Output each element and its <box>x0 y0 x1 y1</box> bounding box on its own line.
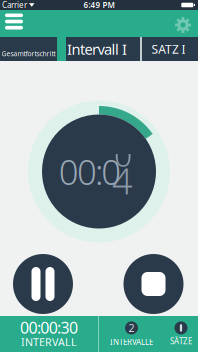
button[interactable]: SATZ I <box>142 37 198 61</box>
staticText: Intervall I <box>67 39 127 59</box>
staticText: 0 <box>114 133 132 176</box>
staticText: 00:0 <box>59 148 121 194</box>
staticText: 4 <box>112 157 133 204</box>
staticText: INTERVALL <box>21 335 77 349</box>
button[interactable]: Gesamtfortschritt <box>0 37 57 61</box>
staticText: SÄTZE <box>170 336 192 346</box>
staticText: 6:49 PM <box>83 0 114 10</box>
staticText: INTERVALLE <box>110 336 153 347</box>
button[interactable]: Intervall I <box>66 37 140 61</box>
button[interactable]: Pause <box>13 254 73 314</box>
staticText: 2 <box>128 321 134 335</box>
button[interactable]: Stop <box>123 254 183 314</box>
staticText: SATZ I <box>151 41 185 57</box>
staticText: 00:00:30 <box>20 317 78 338</box>
staticText: Carrier <box>2 0 27 10</box>
button[interactable]: Settings <box>175 14 198 33</box>
button[interactable]: Menu <box>0 13 23 33</box>
staticText: Gesamtfortschritt <box>1 49 55 58</box>
